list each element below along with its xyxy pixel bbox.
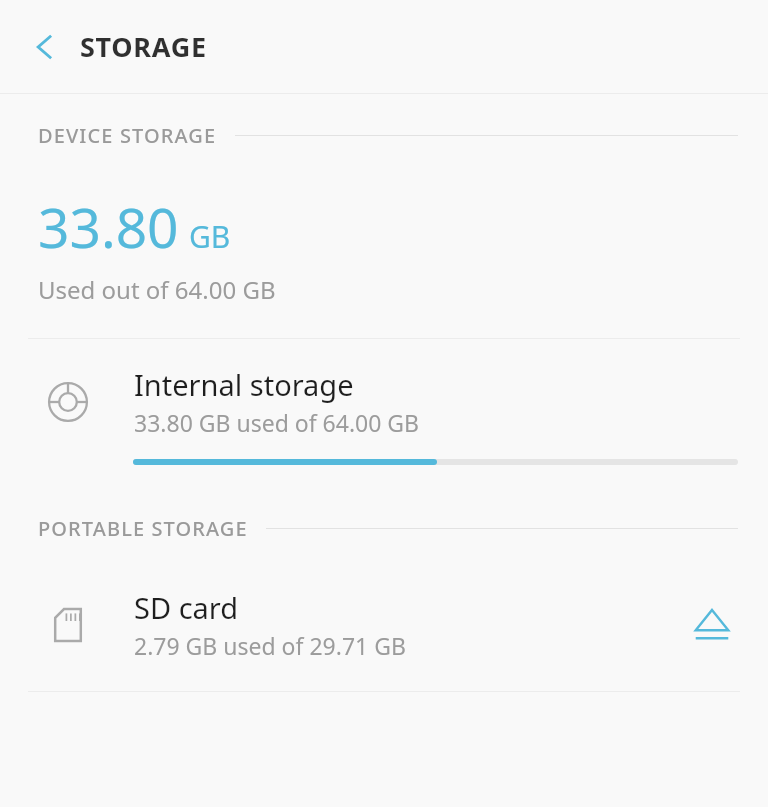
staticText: GB: [189, 216, 231, 257]
staticText: 33.80: [38, 189, 179, 264]
staticText: SD card: [134, 588, 239, 627]
staticText: 33.80 GB used of 64.00 GB: [134, 407, 420, 438]
staticText: PORTABLE STORAGE: [38, 515, 248, 542]
button[interactable]: Internal storage: [0, 339, 768, 493]
staticText: Used out of 64.00 GB: [38, 273, 276, 306]
button[interactable]: SD card: [0, 564, 768, 691]
staticText: 2.79 GB used of 29.71 GB: [134, 630, 406, 661]
button[interactable]: Back: [12, 14, 78, 80]
staticText: Internal storage: [134, 365, 354, 404]
staticText: STORAGE: [80, 28, 207, 65]
staticText: DEVICE STORAGE: [38, 122, 217, 149]
button[interactable]: Eject SD card: [682, 595, 742, 655]
